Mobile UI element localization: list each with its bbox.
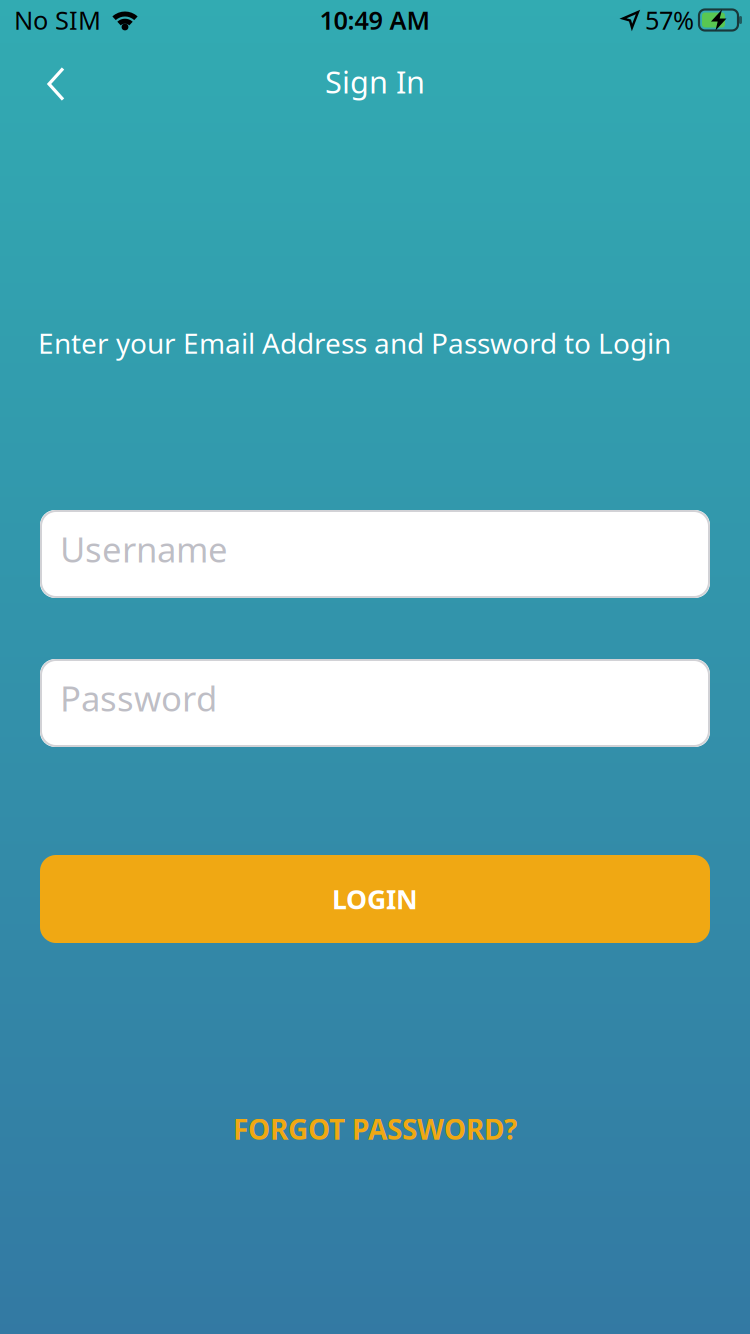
staticText: LOGIN [332, 881, 418, 917]
button[interactable]: LOGIN [40, 855, 710, 943]
staticText: 10:49 AM [319, 3, 430, 37]
staticText: 57% [645, 3, 694, 37]
staticText: Enter your Email Address and Password to… [38, 324, 671, 362]
staticText: No SIM [14, 3, 101, 37]
button[interactable]: Back [0, 40, 89, 128]
staticText: Password [60, 675, 217, 721]
button[interactable]: Username [40, 510, 710, 598]
button[interactable]: Password [40, 659, 710, 747]
staticText: Username [60, 526, 228, 572]
staticText: FORGOT PASSWORD? [233, 1110, 517, 1148]
button[interactable]: FORGOT PASSWORD? [233, 1109, 517, 1149]
staticText: Sign In [325, 61, 425, 102]
